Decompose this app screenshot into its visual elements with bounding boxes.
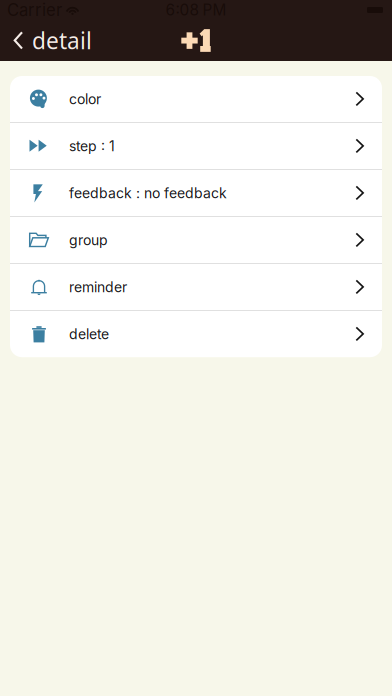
button[interactable]: color [10, 76, 382, 122]
staticText: step : 1 [69, 138, 115, 154]
staticText: color [69, 91, 101, 107]
staticText: delete [69, 326, 109, 342]
button[interactable]: delete [10, 311, 382, 357]
button[interactable]: feedback : no feedback [10, 170, 382, 216]
button[interactable]: reminder [10, 264, 382, 310]
button[interactable]: detail [0, 20, 104, 61]
staticText: reminder [69, 279, 127, 295]
button[interactable]: group [10, 217, 382, 263]
staticText: feedback : no feedback [69, 185, 227, 201]
staticText: group [69, 232, 108, 248]
button[interactable]: step : 1 [10, 123, 382, 169]
staticText: detail [32, 25, 92, 55]
staticText: Carrier [7, 0, 62, 20]
staticText: 6:08 PM [165, 1, 226, 19]
